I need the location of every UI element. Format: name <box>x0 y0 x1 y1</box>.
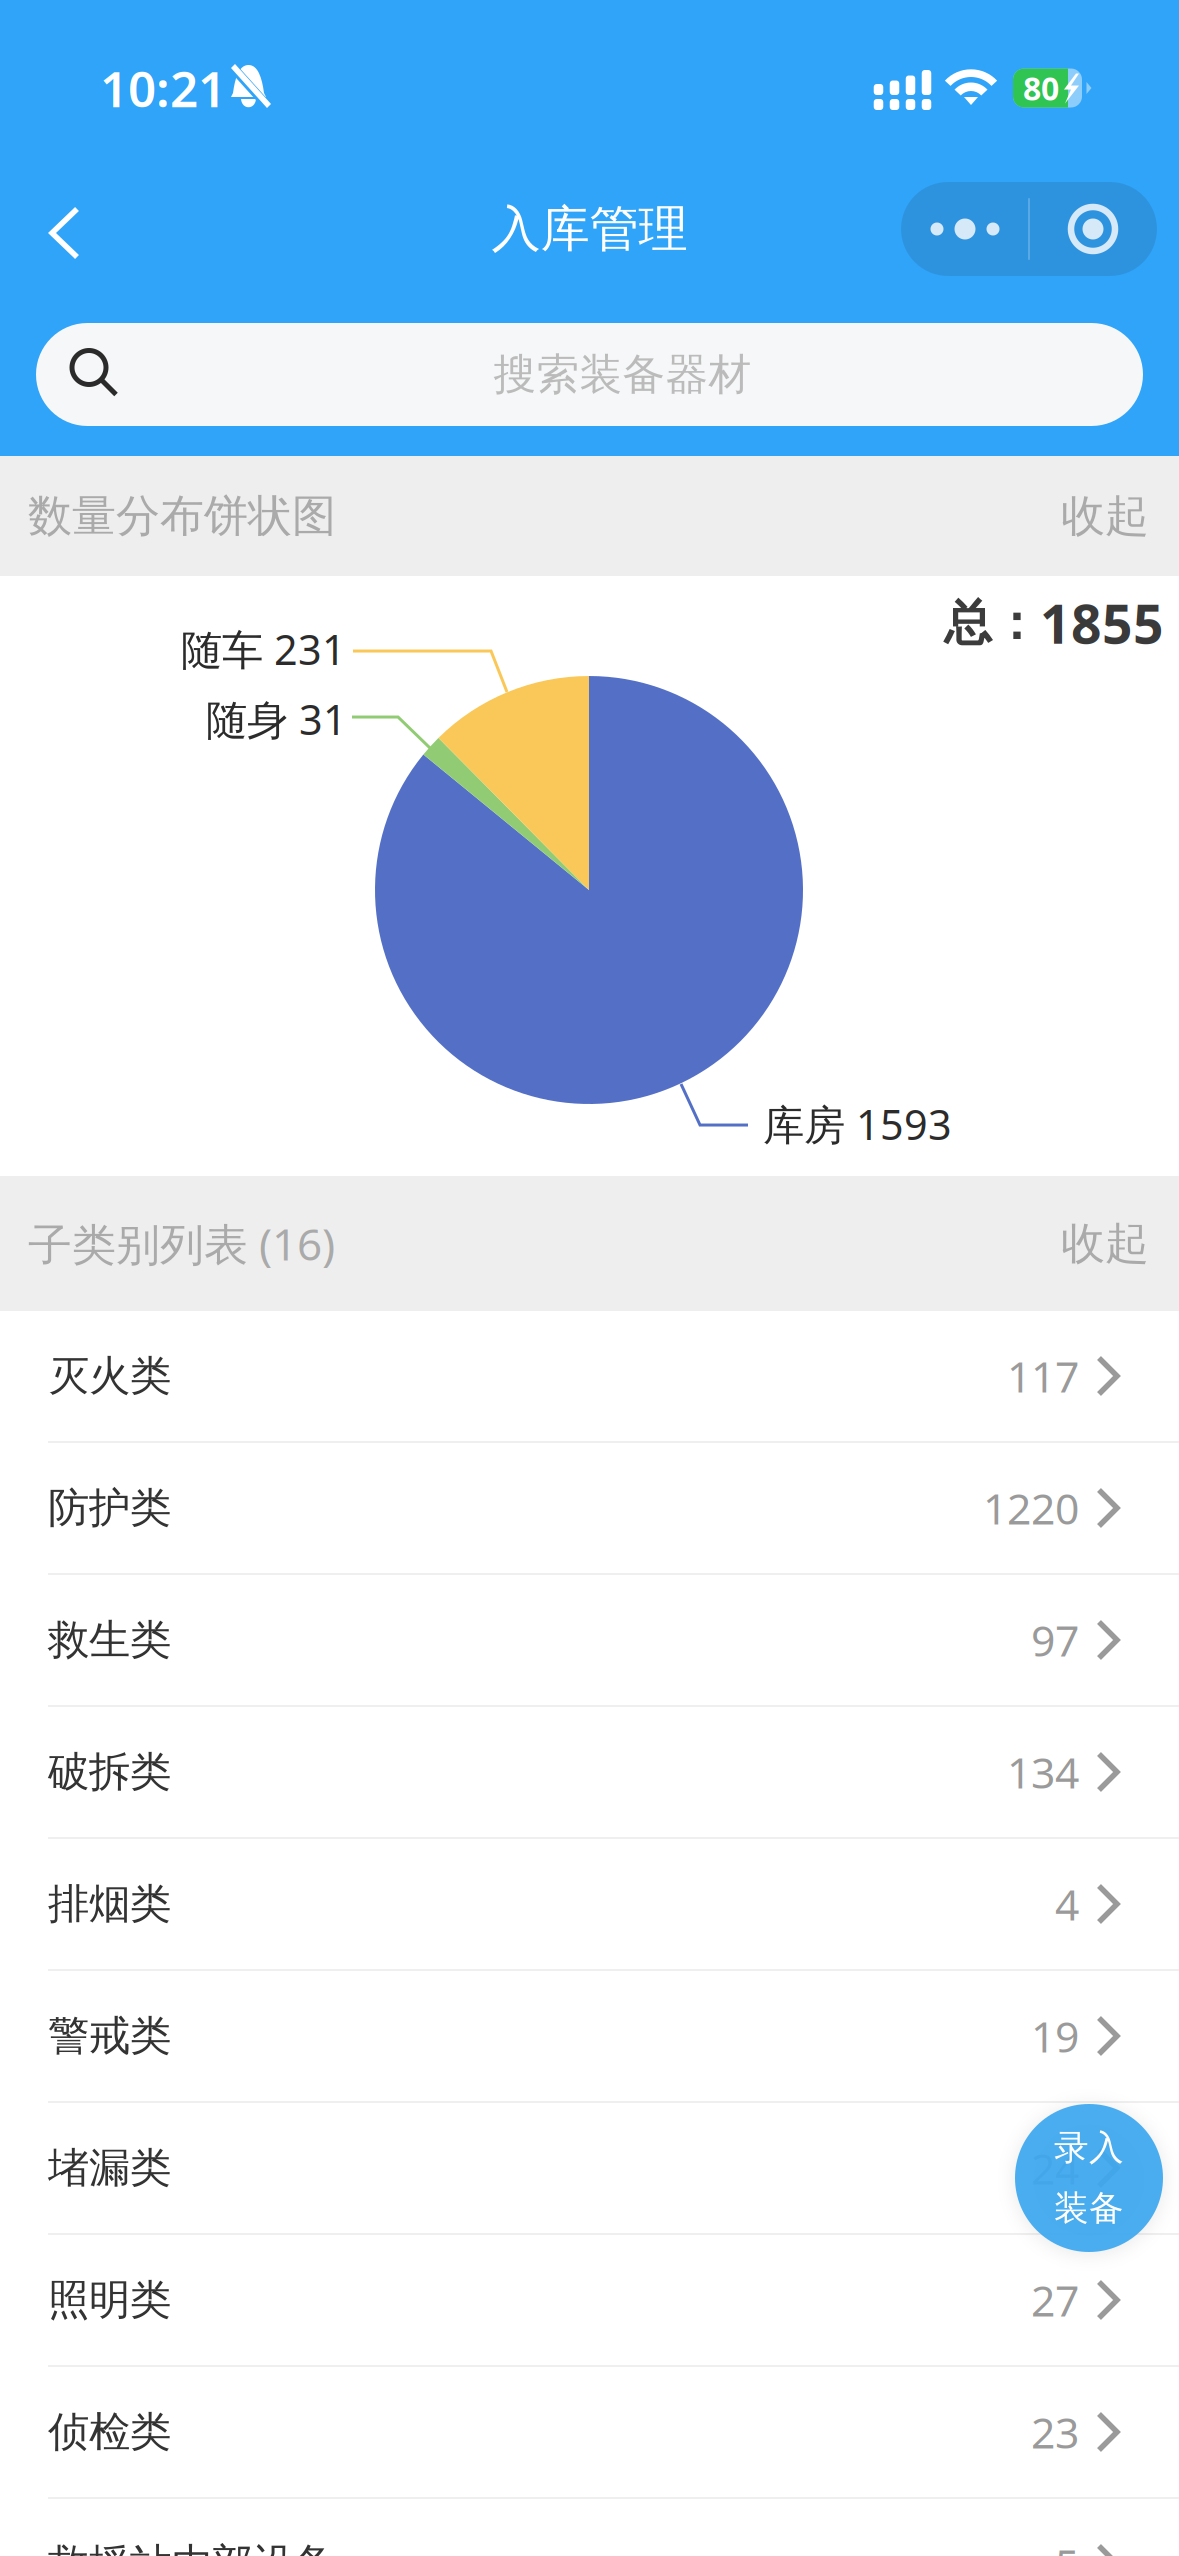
staticText: 照明类 <box>48 2275 171 2325</box>
button[interactable]: 录入 <box>1015 2104 1163 2252</box>
staticText: 134 <box>1007 1744 1079 1800</box>
staticText: 19 <box>1031 2008 1079 2064</box>
staticText: 随身 31 <box>206 692 347 746</box>
button[interactable]: Back <box>21 180 108 286</box>
button[interactable]: 警戒类 <box>0 1971 1179 2103</box>
staticText: 随车 231 <box>181 622 346 676</box>
button[interactable]: More options <box>901 182 1157 276</box>
button[interactable]: 侦检类 <box>0 2367 1179 2499</box>
staticText: 装备 <box>1054 2187 1124 2230</box>
staticText: 库房 1593 <box>763 1097 952 1151</box>
staticText: 救援站内部设备 <box>48 2539 335 2556</box>
staticText: 23 <box>1031 2404 1079 2460</box>
staticText: 1220 <box>983 1480 1079 1536</box>
staticText: 侦检类 <box>48 2407 171 2457</box>
button[interactable]: 排烟类 <box>0 1839 1179 1971</box>
staticText: 117 <box>1007 1348 1079 1404</box>
staticText: 10:21 <box>100 55 226 121</box>
button[interactable]: 收起 <box>1061 489 1149 543</box>
staticText: 警戒类 <box>48 2011 171 2061</box>
staticText: 收起 <box>1061 489 1149 543</box>
staticText: 录入 <box>1054 2126 1124 2169</box>
button[interactable]: 搜索装备器材 <box>36 323 1143 426</box>
staticText: 搜索装备器材 <box>493 348 751 401</box>
staticText: 4 <box>1055 1876 1079 1932</box>
staticText: 5 <box>1055 2536 1079 2556</box>
button[interactable]: 救援站内部设备 <box>0 2499 1179 2556</box>
staticText: 80 <box>1023 67 1059 109</box>
staticText: 24 <box>1031 2140 1079 2196</box>
button[interactable]: 救生类 <box>0 1575 1179 1707</box>
button[interactable]: 防护类 <box>0 1443 1179 1575</box>
staticText: 97 <box>1031 1612 1079 1668</box>
button[interactable]: 收起 <box>1061 1216 1149 1270</box>
button[interactable]: 堵漏类 <box>0 2103 1179 2235</box>
staticText: 入库管理 <box>491 199 687 259</box>
staticText: 1855 <box>1040 588 1164 658</box>
staticText: 破拆类 <box>48 1747 171 1797</box>
staticText: 子类别列表 (16) <box>28 1214 335 1273</box>
button[interactable]: 破拆类 <box>0 1707 1179 1839</box>
button[interactable]: 照明类 <box>0 2235 1179 2367</box>
staticText: 总： <box>944 593 1040 652</box>
staticText: 排烟类 <box>48 1879 171 1929</box>
staticText: 救生类 <box>48 1615 171 1665</box>
staticText: 27 <box>1031 2272 1079 2328</box>
staticText: 防护类 <box>48 1483 171 1533</box>
button[interactable]: 灭火类 <box>0 1311 1179 1443</box>
staticText: 灭火类 <box>48 1351 171 1401</box>
staticText: 堵漏类 <box>48 2143 171 2193</box>
staticText: 数量分布饼状图 <box>28 489 336 543</box>
staticText: 收起 <box>1061 1216 1149 1270</box>
